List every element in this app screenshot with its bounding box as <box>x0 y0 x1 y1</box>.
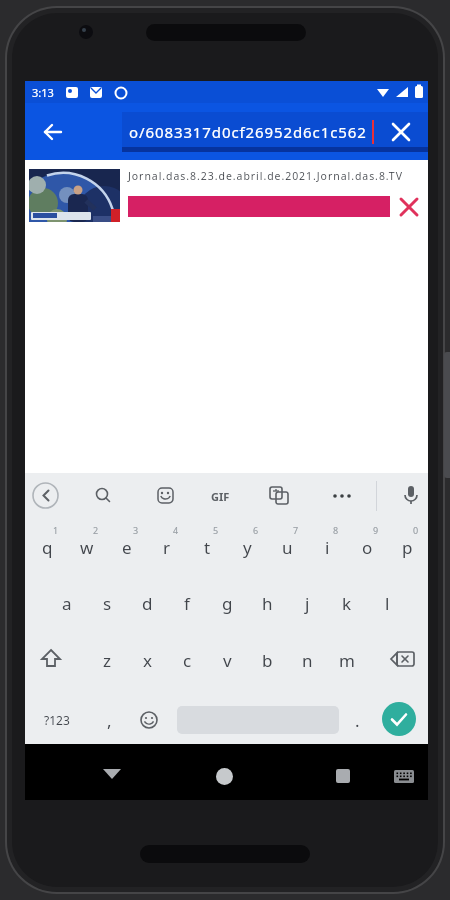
button[interactable]: ?123 <box>33 696 81 744</box>
button[interactable]: w <box>67 522 107 572</box>
staticText: d <box>142 592 153 615</box>
staticText: t <box>204 536 211 559</box>
button[interactable] <box>393 769 415 784</box>
staticText: w <box>80 536 94 559</box>
button[interactable] <box>35 117 71 147</box>
staticText: a <box>62 592 72 615</box>
button[interactable] <box>336 769 350 783</box>
button[interactable]: i <box>307 522 347 572</box>
button[interactable] <box>381 635 427 685</box>
button[interactable]: p <box>387 522 427 572</box>
staticText: 3 <box>133 524 139 536</box>
button[interactable]: g <box>207 578 247 628</box>
staticText: n <box>302 649 313 672</box>
button[interactable] <box>32 482 59 509</box>
staticText: j <box>305 592 310 615</box>
staticText: 5 <box>213 524 219 536</box>
button[interactable]: u <box>267 522 307 572</box>
staticText: k <box>342 592 352 615</box>
staticText: Jornal.das.8.23.de.abril.de.2021.Jornal.… <box>128 169 403 183</box>
button[interactable]: k <box>327 578 367 628</box>
staticText: g <box>222 592 233 615</box>
button[interactable] <box>29 635 73 685</box>
button[interactable] <box>216 768 233 785</box>
staticText: u <box>282 536 293 559</box>
button[interactable]: f <box>167 578 207 628</box>
staticText: l <box>385 592 390 615</box>
staticText: ?123 <box>44 712 70 728</box>
button[interactable]: j <box>287 578 327 628</box>
button[interactable] <box>385 116 417 148</box>
staticText: 1 <box>53 524 59 536</box>
button[interactable]: b <box>247 635 287 685</box>
button[interactable] <box>382 702 416 736</box>
staticText: 9 <box>373 524 379 536</box>
button[interactable]: d <box>127 578 167 628</box>
button[interactable]: GIF <box>203 484 237 508</box>
button[interactable] <box>328 482 356 510</box>
button[interactable] <box>390 196 428 217</box>
button[interactable] <box>122 112 428 152</box>
staticText: p <box>402 536 413 559</box>
button[interactable] <box>265 482 293 510</box>
button[interactable]: z <box>87 635 127 685</box>
staticText: i <box>325 536 330 559</box>
button[interactable]: e <box>107 522 147 572</box>
staticText: 8 <box>333 524 339 536</box>
button[interactable] <box>102 766 122 782</box>
button[interactable]: y <box>227 522 267 572</box>
button[interactable]: s <box>87 578 127 628</box>
staticText: c <box>183 649 192 672</box>
button[interactable]: . <box>343 696 371 744</box>
button[interactable]: o <box>347 522 387 572</box>
staticText: o/6083317d0cf26952d6c1c562 <box>129 122 367 142</box>
staticText: x <box>143 649 152 672</box>
staticText: v <box>223 649 232 672</box>
staticText: r <box>163 536 171 559</box>
staticText: 7 <box>293 524 299 536</box>
button[interactable]: q <box>27 522 67 572</box>
button[interactable]: , <box>91 696 127 744</box>
staticText: e <box>122 536 132 559</box>
button[interactable]: Jornal.das.8.23.de.abril.de.2021.Jornal.… <box>25 169 428 231</box>
button[interactable] <box>131 696 167 744</box>
staticText: z <box>103 649 111 672</box>
button[interactable] <box>89 482 117 510</box>
button[interactable] <box>151 482 179 510</box>
staticText: q <box>42 536 53 559</box>
staticText: s <box>103 592 112 615</box>
staticText: 4 <box>173 524 179 536</box>
staticText: f <box>184 592 190 615</box>
staticText: 0 <box>413 524 419 536</box>
button[interactable]: r <box>147 522 187 572</box>
staticText: m <box>339 649 355 672</box>
button[interactable] <box>397 481 425 509</box>
button[interactable]: x <box>127 635 167 685</box>
button[interactable]: h <box>247 578 287 628</box>
button[interactable]: c <box>167 635 207 685</box>
staticText: y <box>243 536 252 559</box>
staticText: h <box>262 592 273 615</box>
staticText: 6 <box>253 524 259 536</box>
staticText: 2 <box>93 524 99 536</box>
button[interactable]: l <box>367 578 407 628</box>
button[interactable]: m <box>327 635 367 685</box>
staticText: o <box>362 536 373 559</box>
button[interactable]: a <box>47 578 87 628</box>
staticText: . <box>355 709 360 732</box>
staticText: b <box>262 649 273 672</box>
staticText: GIF <box>211 489 230 504</box>
button[interactable]: n <box>287 635 327 685</box>
staticText: 3:13 <box>32 85 54 100</box>
staticText: , <box>107 709 112 732</box>
button[interactable]: v <box>207 635 247 685</box>
button[interactable]: t <box>187 522 227 572</box>
